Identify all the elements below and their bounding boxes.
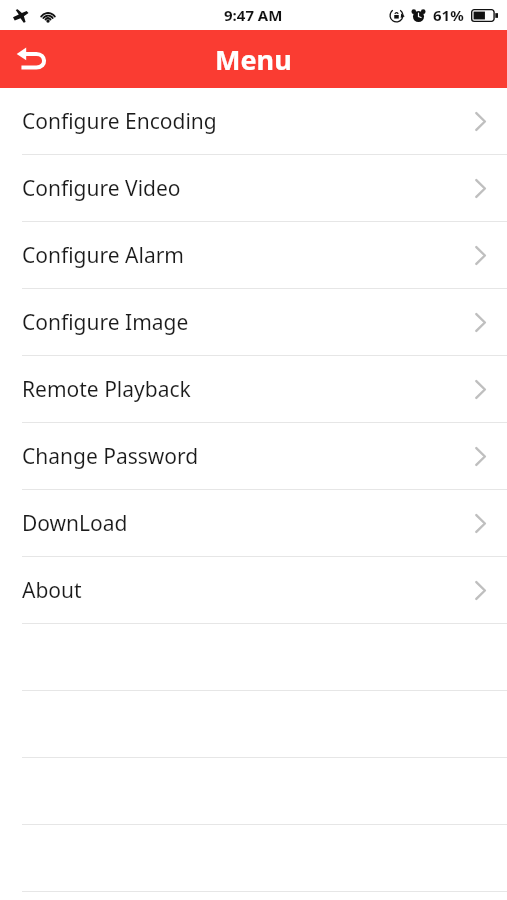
button[interactable]: DownLoad (0, 490, 507, 557)
staticText: Change Password (22, 442, 199, 471)
button[interactable]: Configure Encoding (0, 88, 507, 155)
button[interactable]: Configure Alarm (0, 222, 507, 289)
staticText: Remote Playback (22, 375, 191, 404)
button[interactable]: About (0, 557, 507, 624)
button[interactable]: Configure Image (0, 289, 507, 356)
button[interactable]: Remote Playback (0, 356, 507, 423)
staticText: Configure Video (22, 174, 181, 203)
staticText: 9:47 AM (224, 5, 283, 25)
staticText: 61% (433, 5, 464, 25)
button[interactable]: Configure Video (0, 155, 507, 222)
button[interactable]: Back (0, 30, 66, 88)
staticText: About (22, 576, 82, 605)
staticText: DownLoad (22, 509, 128, 538)
staticText: Configure Encoding (22, 107, 217, 136)
staticText: Configure Image (22, 308, 189, 337)
staticText: Menu (215, 41, 292, 78)
staticText: Configure Alarm (22, 241, 184, 270)
button[interactable]: Change Password (0, 423, 507, 490)
